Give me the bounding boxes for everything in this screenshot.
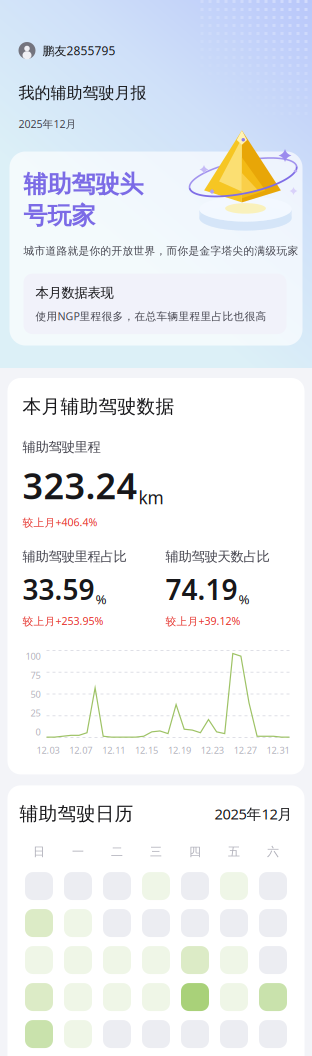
staticText: 2025年12月	[214, 804, 292, 824]
staticText: 辅助驾驶头	[23, 169, 143, 199]
staticText: 12.15	[135, 744, 158, 756]
staticText: 25	[30, 707, 40, 719]
staticText: 号玩家	[23, 201, 95, 230]
staticText: 较上月+253.95%	[22, 614, 103, 628]
staticText: 50	[30, 688, 40, 700]
staticText: 0	[35, 726, 40, 738]
staticText: 12.19	[168, 744, 191, 756]
staticText: 辅助驾驶里程占比	[22, 548, 126, 565]
staticText: 12.31	[266, 744, 289, 756]
button[interactable]: 鹏友2855795	[0, 42, 312, 59]
staticText: %	[95, 590, 106, 608]
staticText: 33.59	[22, 571, 94, 608]
staticText: 较上月+39.12%	[165, 614, 240, 628]
staticText: 使用NGP里程很多，在总车辆里程里占比也很高	[35, 309, 266, 323]
staticText: 较上月+406.4%	[22, 515, 97, 529]
staticText: 二	[111, 844, 123, 859]
staticText: 75	[30, 669, 40, 681]
staticText: 鹏友2855795	[42, 42, 115, 58]
staticText: 2025年12月	[18, 117, 76, 131]
staticText: 12.11	[102, 744, 125, 756]
staticText: 三	[150, 844, 162, 859]
staticText: 我的辅助驾驶月报	[18, 83, 146, 103]
staticText: 一	[72, 844, 84, 859]
staticText: 日	[33, 844, 45, 859]
staticText: 12.03	[36, 744, 59, 756]
staticText: 五	[228, 844, 240, 859]
staticText: 辅助驾驶里程	[22, 439, 100, 455]
staticText: %	[238, 590, 249, 608]
staticText: 12.23	[201, 744, 224, 756]
staticText: 100	[25, 650, 40, 662]
staticText: 12.07	[69, 744, 92, 756]
staticText: 六	[267, 844, 279, 859]
staticText: km	[138, 486, 163, 509]
staticText: 四	[189, 844, 201, 859]
staticText: 12.27	[234, 744, 257, 756]
staticText: 本月辅助驾驶数据	[22, 395, 174, 418]
staticText: 辅助驾驶日历	[19, 802, 133, 825]
staticText: 本月数据表现	[35, 285, 113, 301]
staticText: 74.19	[165, 571, 237, 608]
staticText: 辅助驾驶天数占比	[165, 548, 269, 565]
staticText: 323.24	[22, 461, 137, 509]
staticText: 城市道路就是你的开放世界，而你是金字塔尖的满级玩家	[23, 244, 298, 258]
